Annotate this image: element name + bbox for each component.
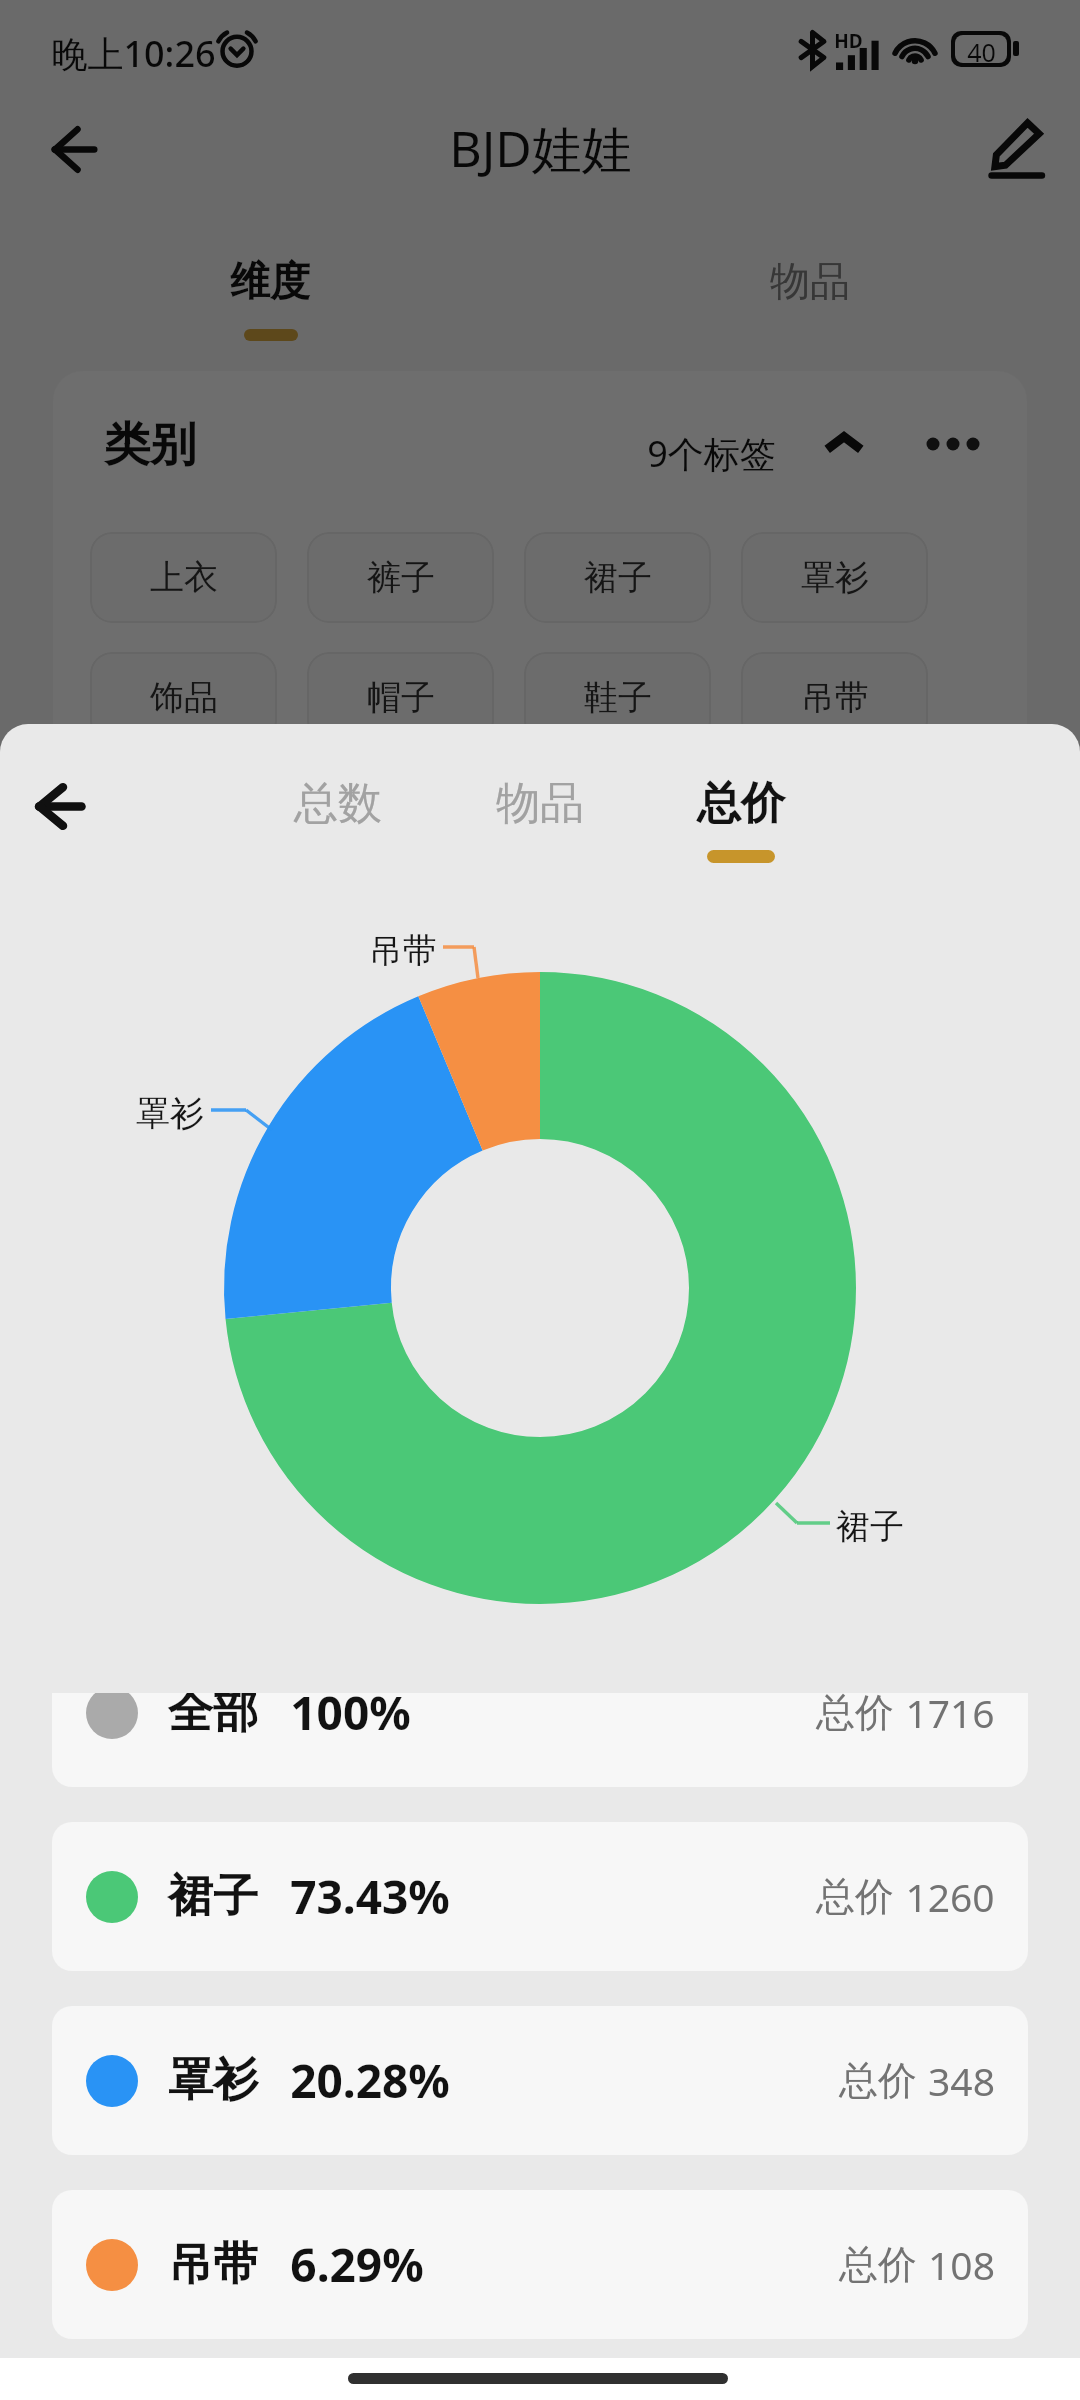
staticText: 维度 (230, 256, 310, 306)
button[interactable]: 吊带 (52, 2190, 1028, 2339)
button[interactable]: 物品 (450, 766, 630, 860)
button[interactable]: Collapse (802, 406, 886, 480)
staticText: 鞋子 (584, 676, 652, 719)
staticText: 罩衫 (168, 2052, 258, 2109)
button[interactable]: 上衣 (90, 532, 277, 623)
button[interactable]: More options (906, 403, 1002, 499)
staticText: 总价 (839, 2056, 917, 2105)
staticText: 73.43% (290, 1865, 450, 1928)
button[interactable]: 全部 (52, 1693, 1028, 1787)
button[interactable]: 饰品 (90, 652, 277, 743)
staticText: 348 (928, 2054, 995, 2107)
staticText: 总价 (816, 1693, 894, 1737)
staticText: 吊带 (168, 2236, 258, 2293)
staticText: 类别 (104, 416, 196, 474)
staticText: 罩衫 (801, 556, 869, 599)
staticText: 饰品 (150, 676, 218, 719)
button[interactable]: 帽子 (307, 652, 494, 743)
button[interactable]: 吊带 (741, 652, 928, 743)
button[interactable]: 鞋子 (524, 652, 711, 743)
staticText: 6.29% (290, 2233, 424, 2296)
staticText: 全部 (168, 1693, 258, 1741)
staticText: 帽子 (367, 676, 435, 719)
staticText: 吊带 (369, 929, 437, 972)
staticText: 上衣 (150, 556, 218, 599)
staticText: 总价 (816, 1872, 894, 1921)
staticText: 1260 (905, 1870, 995, 1923)
staticText: BJD娃娃 (449, 114, 632, 182)
staticText: 总价 (697, 776, 785, 831)
staticText: 罩衫 (136, 1092, 204, 1135)
button[interactable]: Back (38, 114, 110, 185)
staticText: 裙子 (168, 1868, 258, 1925)
button[interactable]: 总价 (651, 766, 831, 873)
staticText: 裙子 (584, 556, 652, 599)
staticText: 物品 (496, 776, 584, 831)
staticText: 物品 (770, 256, 850, 306)
button[interactable]: 裙子 (52, 1822, 1028, 1971)
staticText: 20.28% (290, 2049, 450, 2112)
staticText: 40 (967, 35, 996, 63)
staticText: 108 (928, 2238, 995, 2291)
button[interactable]: 罩衫 (52, 2006, 1028, 2155)
staticText: 1716 (905, 1693, 995, 1739)
staticText: 100% (290, 1693, 411, 1744)
staticText: 总价 (839, 2240, 917, 2289)
button[interactable]: 裙子 (524, 532, 711, 623)
staticText: 晚上10:26 (51, 29, 216, 78)
staticText: 裤子 (367, 556, 435, 599)
staticText: 总数 (294, 776, 382, 831)
button[interactable]: Edit (977, 105, 1057, 184)
staticText: 裙子 (836, 1505, 904, 1548)
staticText: HD (834, 28, 863, 54)
button[interactable]: 罩衫 (741, 532, 928, 623)
button[interactable]: 总数 (248, 766, 428, 860)
button[interactable]: Back (20, 766, 100, 846)
button[interactable]: 裤子 (307, 532, 494, 623)
staticText: 9个标签 (647, 429, 776, 478)
staticText: 吊带 (801, 676, 869, 719)
